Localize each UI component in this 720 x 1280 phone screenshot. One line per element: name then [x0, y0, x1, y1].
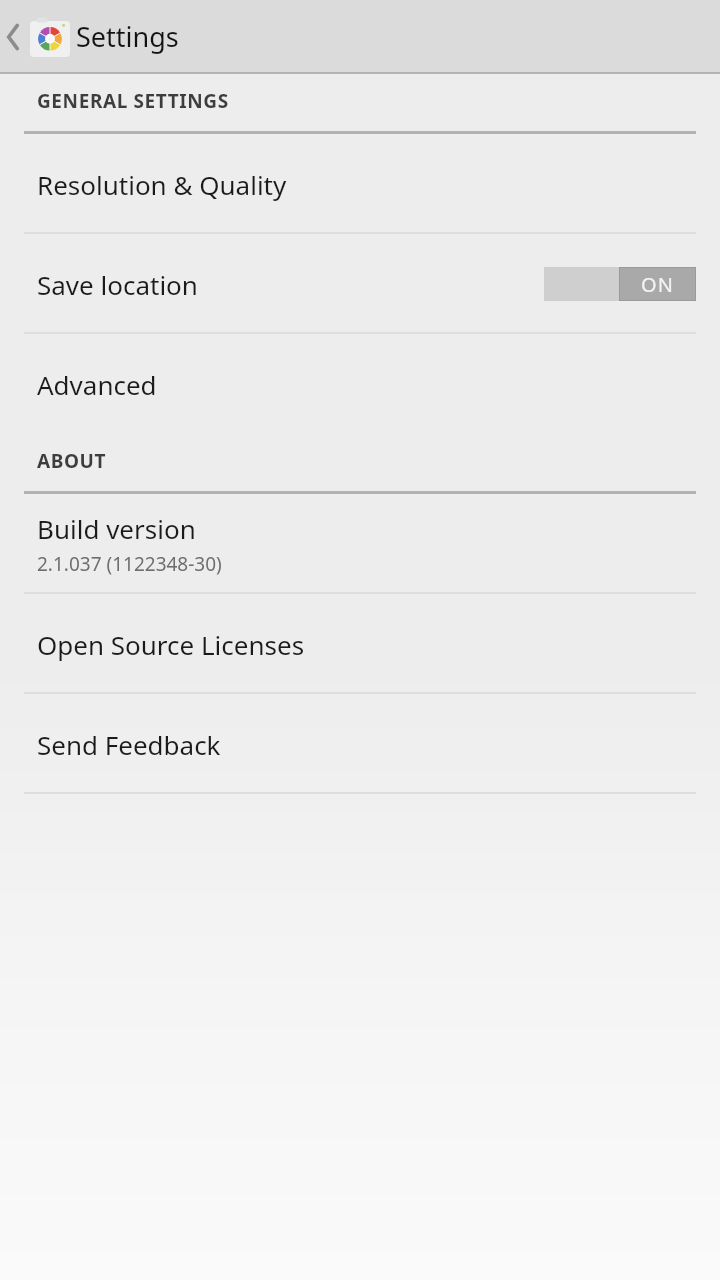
staticText: Open Source Licenses: [37, 627, 305, 662]
button[interactable]: Save location: [0, 234, 720, 334]
button[interactable]: Send Feedback: [0, 694, 720, 794]
button[interactable]: Resolution & Quality: [0, 134, 720, 234]
staticText: ABOUT: [37, 448, 107, 474]
button[interactable]: Navigate up: [0, 0, 78, 74]
staticText: Advanced: [37, 367, 157, 402]
staticText: Build version: [37, 511, 196, 546]
staticText: 2.1.037 (1122348-30): [37, 551, 222, 577]
button[interactable]: Build version: [0, 494, 720, 594]
staticText: ON: [641, 271, 674, 298]
staticText: Resolution & Quality: [37, 167, 287, 202]
button[interactable]: Advanced: [0, 334, 720, 434]
staticText: GENERAL SETTINGS: [37, 88, 229, 114]
staticText: Save location: [37, 267, 198, 302]
button[interactable]: Open Source Licenses: [0, 594, 720, 694]
button[interactable]: Save location on: [544, 267, 696, 301]
staticText: Settings: [76, 18, 179, 55]
staticText: Send Feedback: [37, 727, 221, 762]
